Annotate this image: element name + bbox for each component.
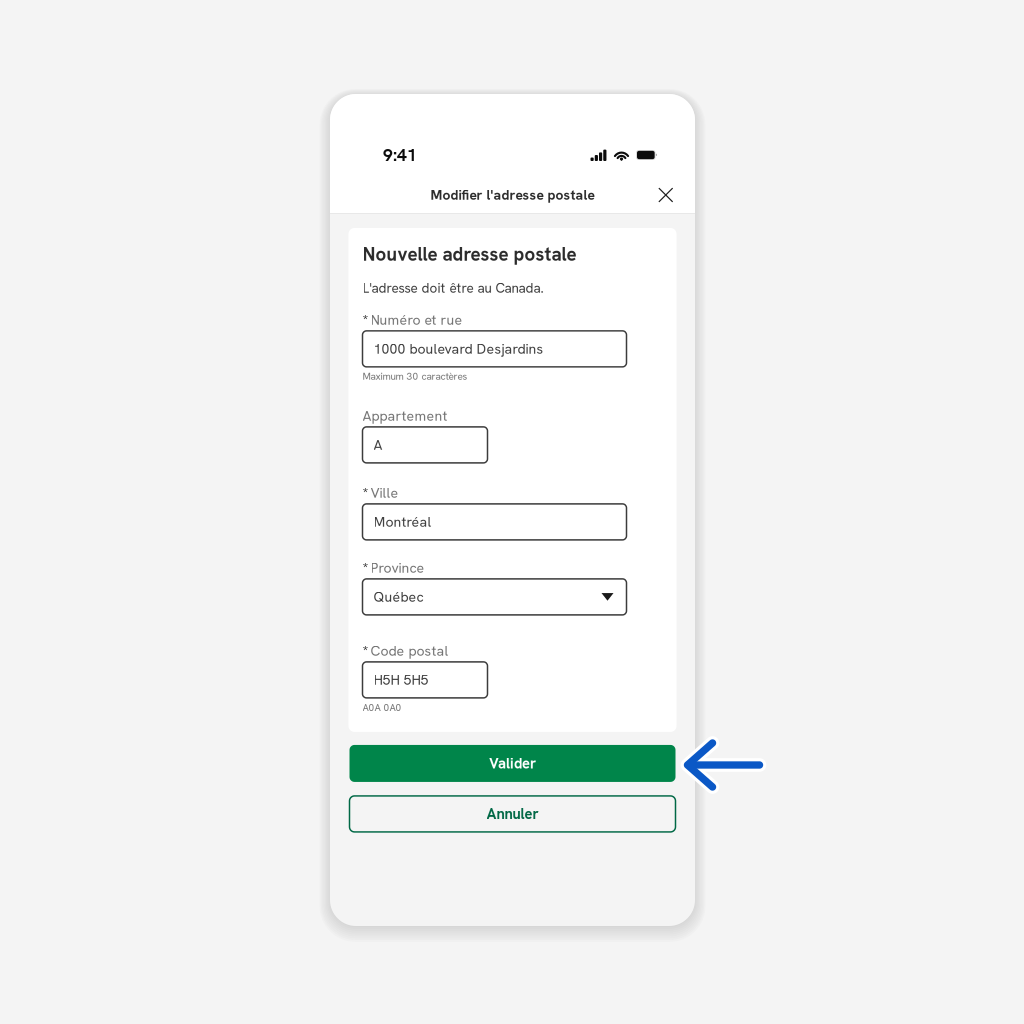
staticText: A xyxy=(373,436,382,454)
staticText: * xyxy=(362,641,368,660)
staticText: L'adresse doit être au Canada. xyxy=(362,279,543,297)
staticText: H5H 5H5 xyxy=(373,671,428,689)
staticText: * xyxy=(362,483,368,502)
staticText: * xyxy=(362,310,368,329)
staticText: Modifier l'adresse postale xyxy=(430,186,594,204)
staticText: 9:41 xyxy=(383,144,417,166)
staticText: 1000 boulevard Desjardins xyxy=(373,340,543,358)
staticText: Code postal xyxy=(370,642,448,660)
staticText: Appartement xyxy=(362,407,447,425)
button[interactable]: Fermer xyxy=(648,177,683,213)
staticText: Province xyxy=(370,559,424,577)
staticText: Nouvelle adresse postale xyxy=(362,242,576,266)
staticText: Montréal xyxy=(373,513,431,531)
staticText: Québec xyxy=(373,588,423,606)
staticText: Ville xyxy=(370,484,398,502)
staticText: Maximum 30 caractères xyxy=(362,370,467,383)
button[interactable]: Annuler xyxy=(349,796,675,832)
staticText: Annuler xyxy=(486,804,538,823)
button[interactable]: Valider xyxy=(349,745,675,782)
staticText: Valider xyxy=(489,754,536,773)
staticText: A0A 0A0 xyxy=(362,701,401,714)
staticText: Numéro et rue xyxy=(370,311,462,329)
staticText: * xyxy=(362,558,368,577)
